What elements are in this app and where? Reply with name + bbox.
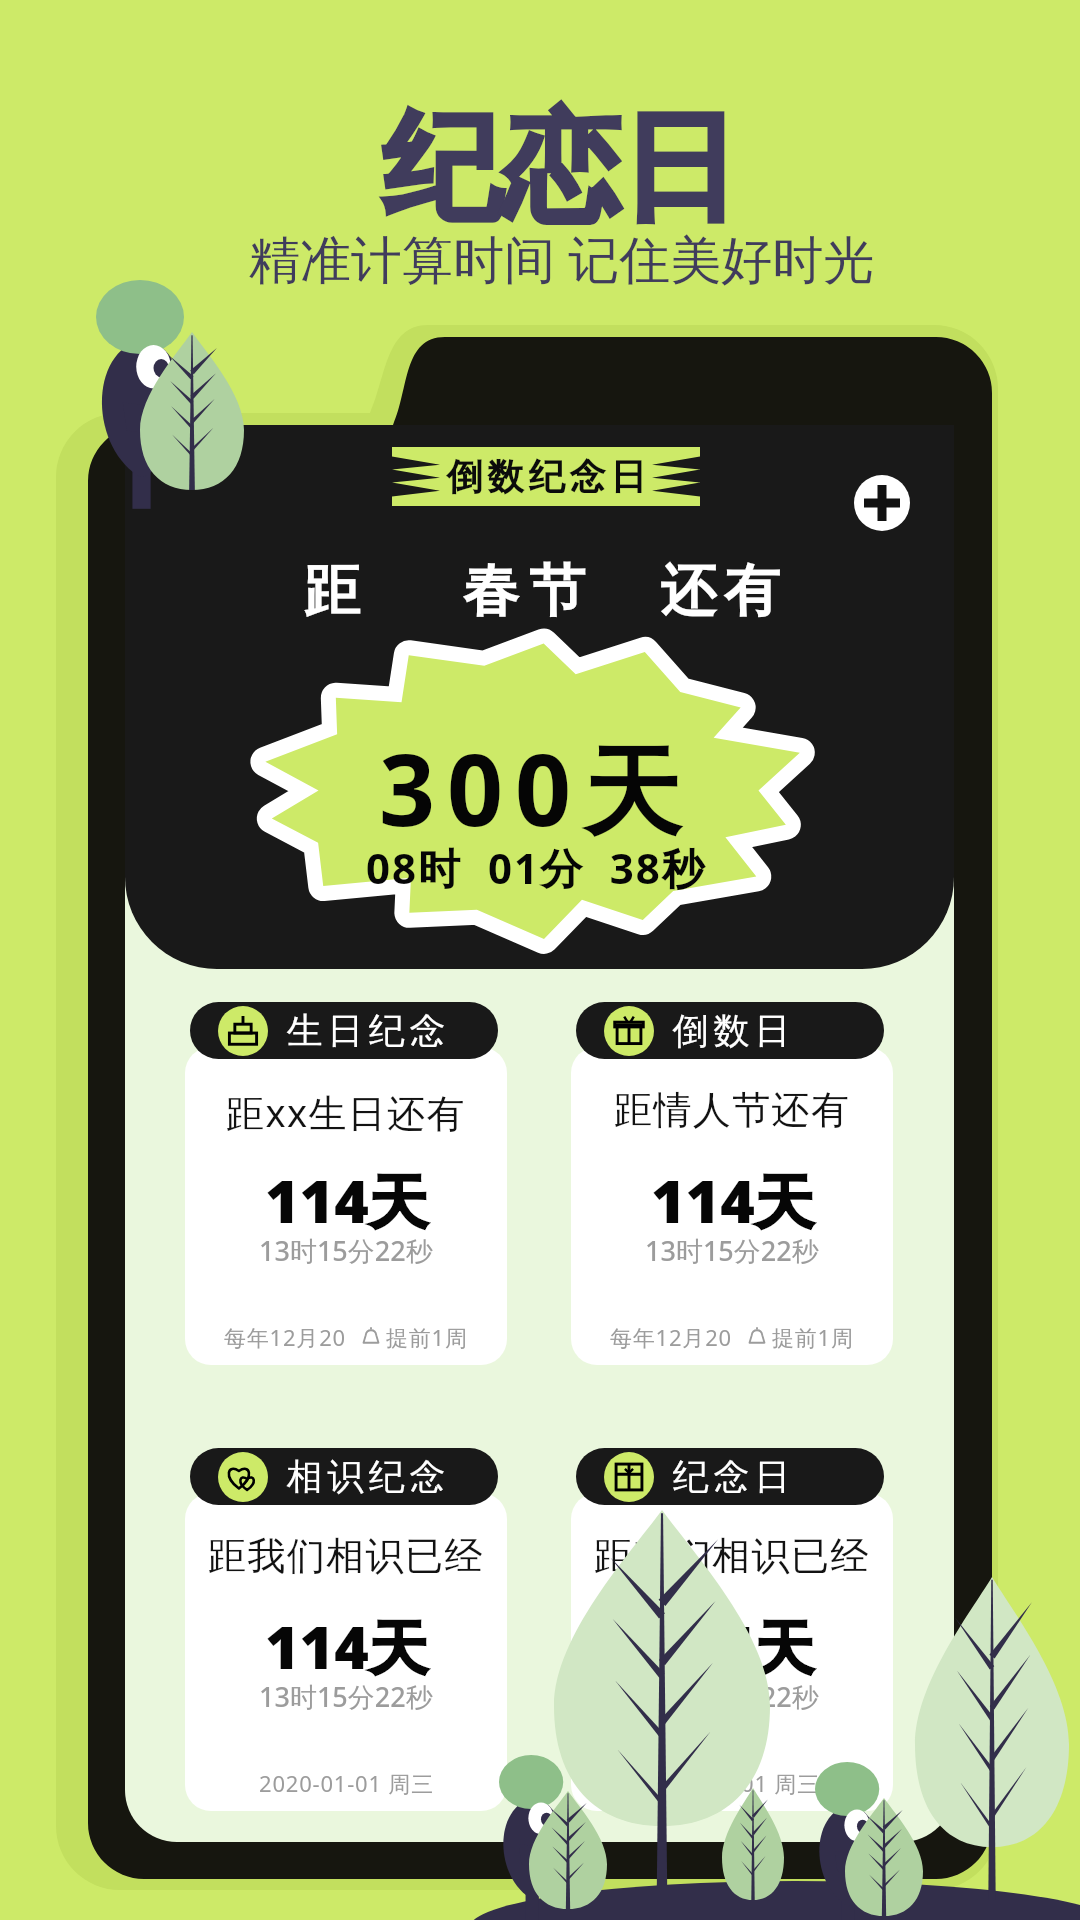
button[interactable]: Add event: [854, 475, 910, 531]
staticText: 倒数日: [670, 1008, 793, 1053]
staticText: 13时15分22秒: [645, 1232, 819, 1269]
staticText: 春节: [458, 556, 590, 627]
staticText: 提前1周: [386, 1322, 468, 1352]
staticText: 纪念日: [670, 1454, 793, 1499]
staticText: 2020-01-01 周三: [645, 1768, 820, 1798]
button[interactable]: 距xx生日还有: [185, 1002, 507, 1365]
staticText: 距我们相识已经: [208, 1532, 484, 1580]
button[interactable]: 距情人节还有: [571, 1002, 893, 1365]
staticText: 每年12月20: [610, 1322, 732, 1352]
staticText: 距: [304, 556, 360, 627]
staticText: 114天: [265, 1160, 428, 1241]
staticText: 114天: [265, 1606, 428, 1687]
staticText: 114天: [651, 1606, 814, 1687]
staticText: 倒数纪念日: [444, 454, 649, 499]
staticText: 距我们相识已经: [594, 1532, 870, 1580]
staticText: 相识纪念: [284, 1454, 448, 1499]
staticText: 08时 01分 38秒: [366, 839, 706, 896]
staticText: 生日纪念: [284, 1008, 448, 1053]
staticText: 距情人节还有: [614, 1086, 851, 1134]
staticText: 距xx生日还有: [226, 1086, 467, 1138]
staticText: 13时15分22秒: [645, 1678, 819, 1715]
button[interactable]: 距我们相识已经: [185, 1448, 507, 1811]
button[interactable]: 距我们相识已经: [571, 1448, 893, 1811]
staticText: 300天: [379, 721, 694, 855]
staticText: 纪恋日: [382, 94, 739, 243]
staticText: 提前1周: [772, 1322, 854, 1352]
staticText: 精准计算时间 记住美好时光: [249, 223, 875, 293]
staticText: 13时15分22秒: [259, 1232, 433, 1269]
staticText: 13时15分22秒: [259, 1678, 433, 1715]
staticText: 2020-01-01 周三: [259, 1768, 434, 1798]
staticText: 每年12月20: [224, 1322, 346, 1352]
staticText: 114天: [651, 1160, 814, 1241]
staticText: 还有: [656, 556, 784, 627]
